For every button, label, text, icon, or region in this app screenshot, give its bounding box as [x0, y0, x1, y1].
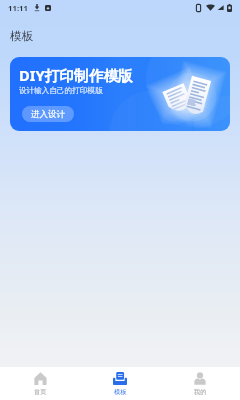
button[interactable]: 首页: [0, 367, 80, 400]
button[interactable]: DIY打印制作模版: [10, 57, 230, 131]
button[interactable]: 进入设计: [22, 106, 74, 122]
staticText: 模板: [114, 388, 127, 396]
staticText: 11:11: [8, 3, 29, 13]
button[interactable]: 我的: [160, 367, 240, 400]
staticText: DIY打印制作模版: [19, 65, 133, 85]
staticText: 设计输入自己的打印模版: [19, 86, 103, 96]
staticText: 模板: [10, 29, 34, 44]
staticText: 首页: [34, 388, 47, 396]
staticText: 我的: [194, 388, 207, 396]
staticText: 进入设计: [31, 109, 65, 120]
button[interactable]: 模板: [80, 367, 160, 400]
